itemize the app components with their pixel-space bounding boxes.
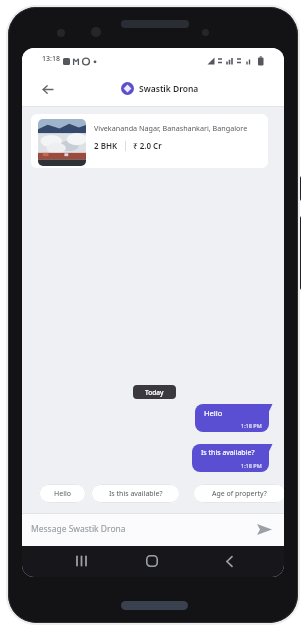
button[interactable]: Is this available? <box>192 444 269 472</box>
staticText: Message Swastik Drona <box>31 523 126 535</box>
staticText: Hello <box>54 489 71 499</box>
button[interactable]: Is this available? <box>91 484 180 503</box>
button[interactable] <box>220 550 238 572</box>
staticText: Hello <box>204 408 223 418</box>
staticText: 1:18 PM <box>241 462 262 469</box>
staticText: Is this available? <box>109 489 163 499</box>
staticText: 13:18 <box>42 54 60 64</box>
button[interactable] <box>143 550 161 572</box>
button[interactable]: Hello <box>195 404 269 432</box>
button[interactable]: Vivekananda Nagar, Banashankari, Bangalo… <box>31 114 268 168</box>
staticText: ₹ 2.0 Cr <box>133 140 162 151</box>
staticText: 2 BHK <box>94 140 118 151</box>
staticText: Today <box>145 388 164 397</box>
button[interactable] <box>35 78 61 100</box>
button[interactable] <box>72 551 90 571</box>
button[interactable]: Age of property? <box>193 484 284 503</box>
staticText: Swastik Drona <box>139 83 199 95</box>
button[interactable]: Hello <box>39 484 86 503</box>
button[interactable]: Message Swastik Drona <box>22 513 284 546</box>
button[interactable] <box>252 519 276 539</box>
staticText: Is this available? <box>201 448 255 458</box>
staticText: Vivekananda Nagar, Banashankari, Bangalo… <box>94 123 248 133</box>
staticText: Age of property? <box>212 489 267 499</box>
button[interactable] <box>121 82 134 95</box>
staticText: 1:18 PM <box>241 422 262 429</box>
